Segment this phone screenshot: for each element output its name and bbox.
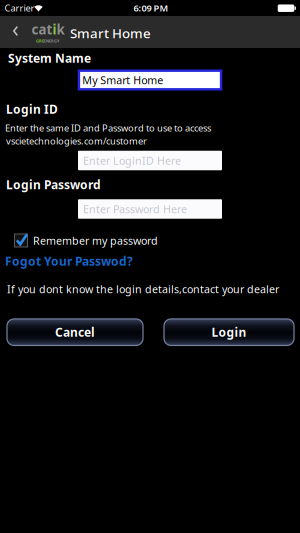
- staticText: My Smart Home: [82, 73, 163, 87]
- staticText: cat: [31, 20, 52, 38]
- button[interactable]: My Smart Home: [78, 69, 222, 90]
- staticText: Enter the same ID and Password to use to…: [5, 122, 211, 134]
- staticText: If you dont know the login details,conta…: [7, 282, 279, 296]
- button[interactable]: [13, 233, 29, 248]
- staticText: Cancel: [55, 324, 95, 340]
- staticText: Login ID: [6, 101, 58, 117]
- staticText: Login Password: [6, 176, 101, 192]
- button[interactable]: Enter Password Here: [78, 199, 222, 219]
- button[interactable]: Enter LoginID Here: [78, 151, 222, 170]
- staticText: ENERGY: [44, 38, 60, 43]
- staticText: Remember my password: [33, 233, 158, 248]
- staticText: Enter Password Here: [83, 202, 187, 216]
- staticText: System Name: [8, 50, 91, 66]
- staticText: Smart Home: [70, 24, 151, 42]
- staticText: Enter LoginID Here: [83, 153, 181, 168]
- staticText: i: [52, 20, 56, 38]
- button[interactable]: [13, 26, 18, 36]
- staticText: vscietechnologies.com/customer: [6, 135, 147, 147]
- staticText: GRE: [36, 38, 44, 43]
- button[interactable]: Fogot Your Passwod?: [5, 253, 300, 269]
- button[interactable]: Cancel: [7, 319, 143, 345]
- staticText: Fogot Your Passwod?: [5, 253, 133, 269]
- staticText: Login: [211, 324, 246, 340]
- staticText: Carrier: [4, 2, 34, 14]
- staticText: 6:09 PM: [133, 2, 168, 14]
- staticText: k: [56, 20, 64, 38]
- button[interactable]: Login: [164, 319, 294, 345]
